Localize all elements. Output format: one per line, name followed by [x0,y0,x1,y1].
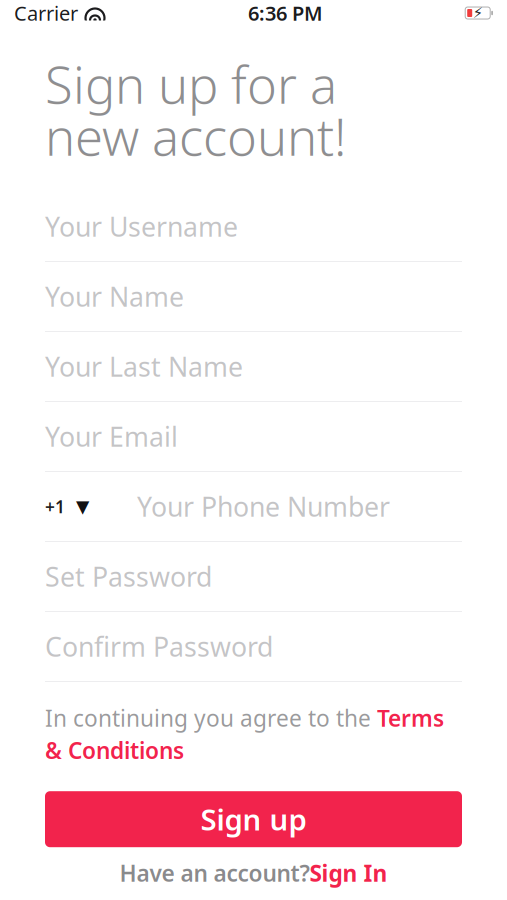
staticText: Your Username [45,209,238,244]
staticText: Terms [377,703,444,733]
staticText: Your Name [45,279,184,314]
button[interactable]: Terms & Conditions [0,682,507,765]
staticText: Confirm Password [45,629,273,664]
staticText: +1 [45,495,65,518]
staticText: Your Last Name [45,349,243,384]
button[interactable]: Confirm Password [45,612,462,682]
staticText: Your Phone Number [137,489,390,524]
button[interactable]: Your Username [45,192,462,262]
button[interactable]: Phone number, country code +1 [45,472,462,542]
staticText: Sign up [200,800,306,839]
staticText: ▼ [76,497,89,516]
staticText: Carrier [14,0,78,26]
button[interactable]: Have an account? [0,852,507,894]
staticText: new account! [45,102,346,170]
staticText: Set Password [45,559,212,594]
staticText: Sign up for a [45,50,337,118]
staticText: 6:36 PM [248,0,323,26]
staticText: Sign In [309,858,387,888]
button[interactable]: Set Password [45,542,462,612]
staticText: ⚡︎ [473,5,483,21]
button[interactable]: Your Last Name [45,332,462,402]
button[interactable]: Sign up [45,791,462,847]
staticText: Your Email [45,419,178,454]
staticText: & Conditions [45,735,184,765]
staticText: In continuing you agree to the [45,703,377,733]
staticText: Have an account? [119,858,309,888]
button[interactable]: Your Email [45,402,462,472]
button[interactable]: Your Name [45,262,462,332]
